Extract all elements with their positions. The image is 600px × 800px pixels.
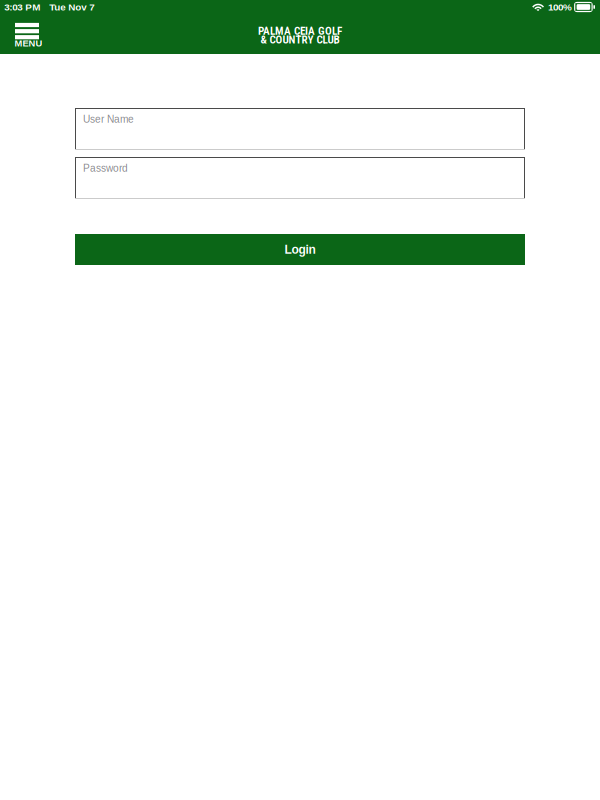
staticText: 100%	[548, 1, 572, 12]
staticText: & COUNTRY CLUB	[260, 33, 339, 46]
staticText: 3:03 PM	[4, 1, 40, 12]
staticText: Login	[284, 243, 315, 256]
staticText: User Name	[83, 113, 134, 125]
staticText: Tue Nov 7	[49, 1, 94, 12]
button[interactable]: Login	[75, 234, 525, 265]
staticText: MENU	[14, 38, 42, 48]
staticText: Password	[83, 162, 128, 174]
button[interactable]: Menu	[15, 17, 49, 54]
staticText: PALMA CEIA GOLF	[258, 24, 342, 37]
